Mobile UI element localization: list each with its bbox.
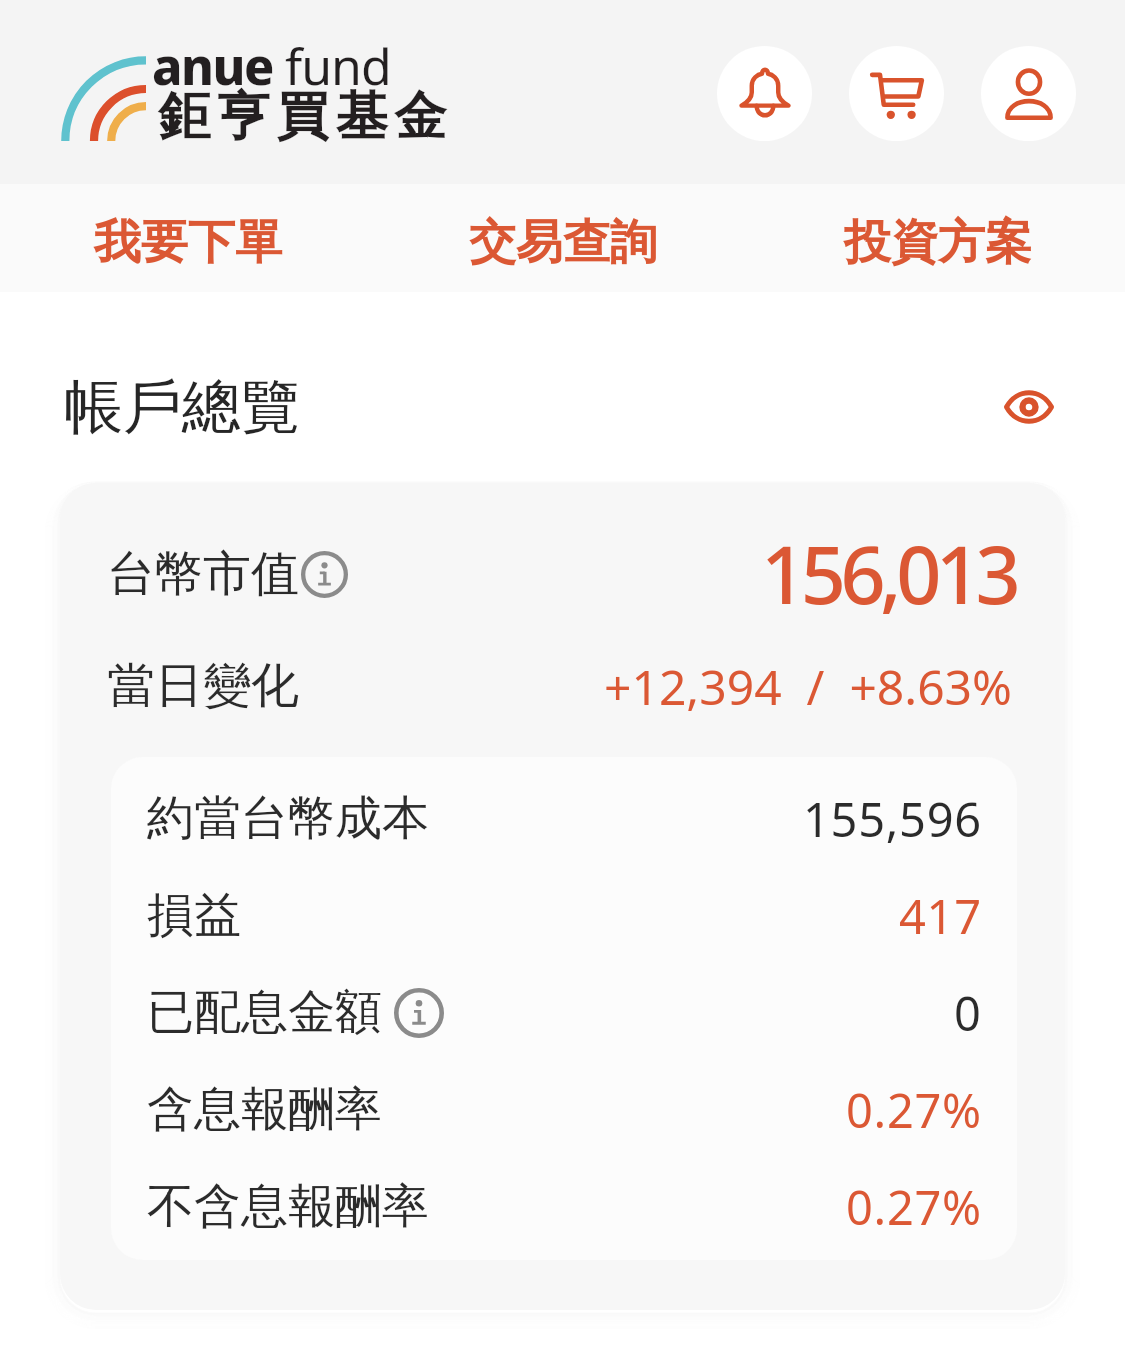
staticText: fund xyxy=(273,32,391,100)
staticText: 0.27% xyxy=(846,1078,982,1142)
button[interactable]: Notifications xyxy=(717,46,812,141)
staticText: 鉅亨買基金 xyxy=(155,84,450,150)
button[interactable]: 投資方案 xyxy=(750,184,1125,292)
staticText: 約當台幣成本 xyxy=(147,789,429,848)
staticText: 交易查詢 xyxy=(469,213,657,272)
staticText: 0 xyxy=(954,981,982,1045)
staticText: 損益 xyxy=(147,886,241,945)
staticText: 投資方案 xyxy=(844,213,1032,272)
button[interactable]: 交易查詢 xyxy=(375,184,750,292)
staticText: 不含息報酬率 xyxy=(147,1177,429,1236)
button[interactable]: Toggle balance visibility xyxy=(1000,378,1058,436)
staticText: 0.27% xyxy=(846,1175,982,1239)
staticText: 我要下單 xyxy=(94,213,282,272)
staticText: 155,596 xyxy=(803,787,982,851)
staticText: 156,013 xyxy=(761,520,1016,628)
button[interactable]: Account xyxy=(981,46,1076,141)
staticText: 帳戶總覽 xyxy=(64,370,300,444)
staticText: 台幣市值 xyxy=(107,544,299,604)
staticText: 當日變化 xyxy=(107,656,299,716)
staticText: 已配息金額 xyxy=(147,983,382,1042)
button[interactable]: Shopping cart xyxy=(849,46,944,141)
staticText: +12,394 / +8.63% xyxy=(604,654,1012,719)
staticText: 417 xyxy=(899,884,982,948)
button[interactable]: 我要下單 xyxy=(0,184,375,292)
staticText: anue xyxy=(152,32,273,100)
staticText: 含息報酬率 xyxy=(147,1080,382,1139)
